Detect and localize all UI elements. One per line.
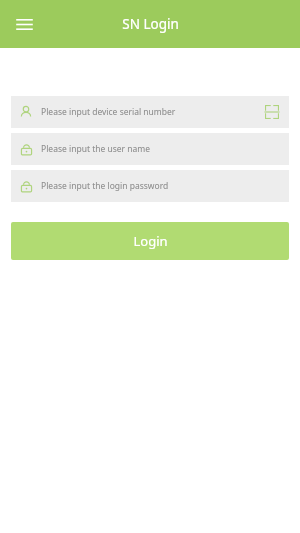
button[interactable]: Please input the login password [11, 170, 289, 202]
staticText: Please input the login password [41, 180, 169, 192]
button[interactable]: Menu [6, 6, 42, 42]
staticText: SN Login [122, 15, 179, 33]
button[interactable]: Scan QR code [262, 102, 282, 122]
button[interactable]: Please input the user name [11, 133, 289, 165]
staticText: Please input device serial number [41, 106, 176, 118]
button[interactable]: Login [11, 222, 289, 260]
staticText: Login [133, 232, 168, 250]
staticText: Please input the user name [41, 143, 151, 155]
button[interactable]: Please input device serial number [11, 96, 289, 128]
